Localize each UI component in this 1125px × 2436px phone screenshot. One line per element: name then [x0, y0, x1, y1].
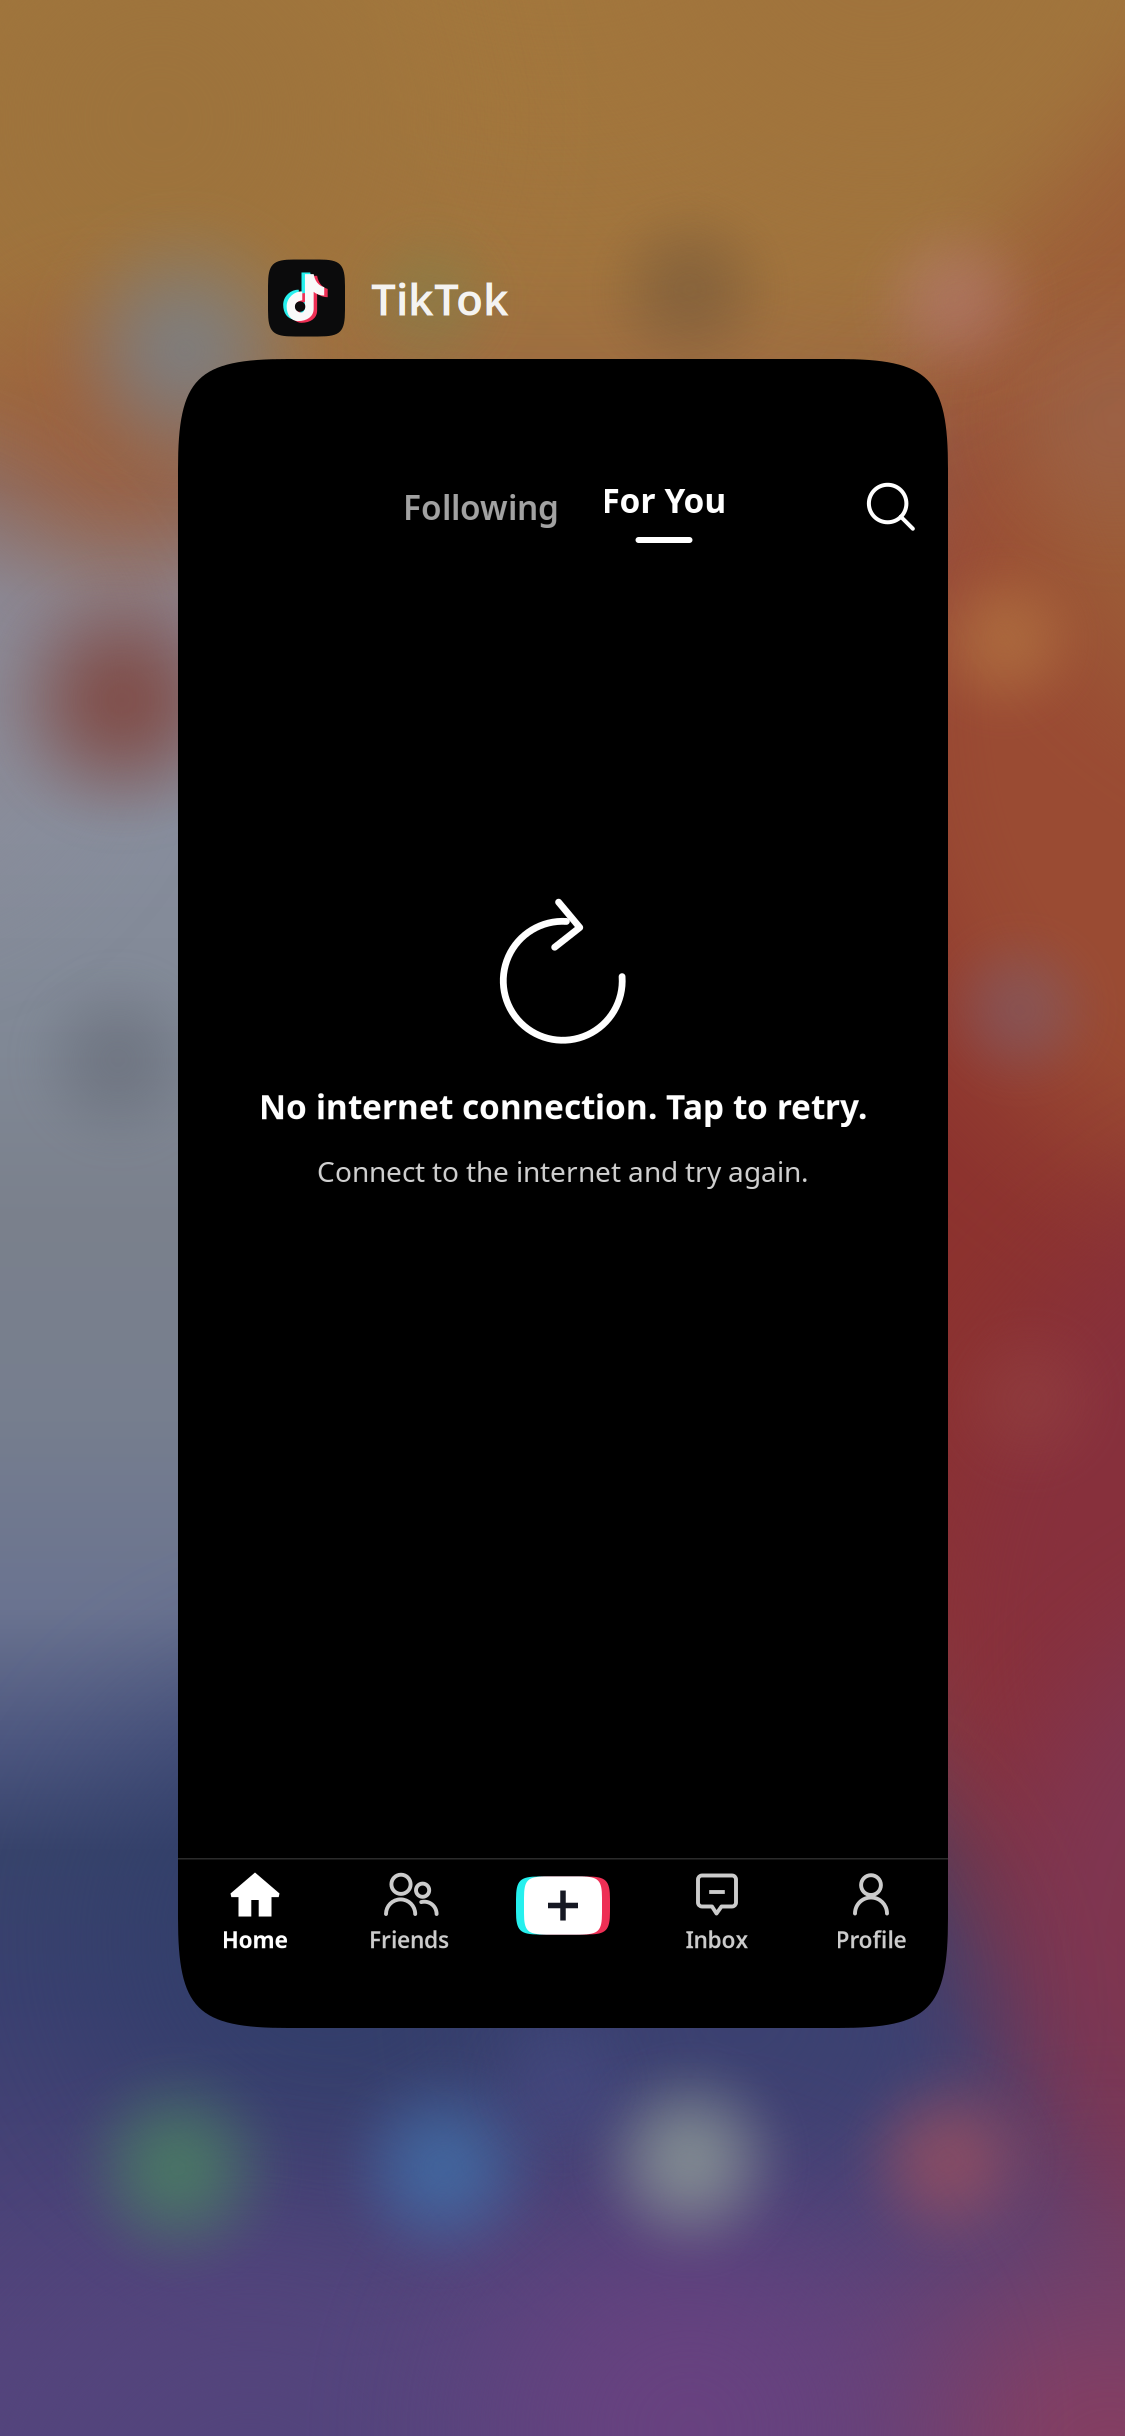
button[interactable]: Home [178, 1859, 332, 1959]
staticText: TikTok [371, 269, 509, 328]
button[interactable]: Search [849, 466, 933, 550]
staticText: For You [601, 478, 726, 522]
staticText: Friends [369, 1924, 449, 1955]
button[interactable]: TikTok [268, 255, 568, 341]
staticText: No internet connection. Tap to retry. [259, 1084, 867, 1129]
button[interactable]: Profile [794, 1859, 948, 1959]
button[interactable]: Inbox [640, 1859, 794, 1959]
staticText: Connect to the internet and try again. [317, 1152, 809, 1190]
button[interactable]: Following [386, 472, 576, 542]
staticText: Following [403, 485, 559, 529]
button[interactable]: For You [574, 465, 754, 551]
staticText: Profile [835, 1924, 906, 1955]
button[interactable]: Create [486, 1859, 640, 1959]
button[interactable]: Friends [332, 1859, 486, 1959]
staticText: Inbox [685, 1924, 748, 1955]
staticText: Home [221, 1924, 288, 1955]
button[interactable]: No internet connection. Tap to retry. [213, 898, 913, 1190]
